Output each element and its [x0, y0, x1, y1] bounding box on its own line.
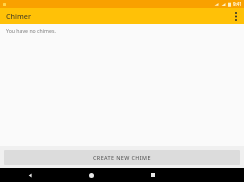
button[interactable]: Recent apps [122, 168, 183, 182]
staticText: CREATE NEW CHIME [93, 154, 151, 161]
button[interactable]: Home [61, 168, 122, 182]
button[interactable]: CREATE NEW CHIME [4, 150, 240, 165]
staticText: 9:41 [233, 1, 242, 7]
staticText: You have no chimes. [6, 27, 56, 34]
staticText: Chimer [6, 11, 31, 21]
button[interactable]: More options [228, 8, 244, 24]
button[interactable]: Back [0, 168, 61, 182]
